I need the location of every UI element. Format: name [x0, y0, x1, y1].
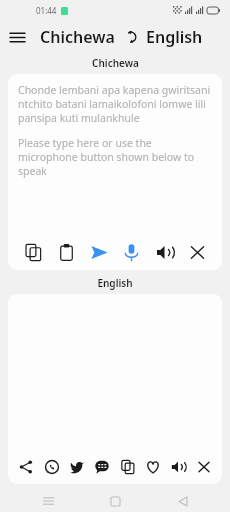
staticText: Chichewa: [92, 56, 139, 70]
button[interactable]: English: [146, 26, 203, 48]
staticText: Chonde lembani apa kapena gwiritsani ntc…: [18, 83, 212, 125]
button[interactable]: Menu: [0, 20, 34, 54]
button[interactable]: Speak: [150, 238, 178, 266]
button[interactable]: Copy: [117, 456, 139, 478]
button[interactable]: Back: [163, 490, 203, 512]
staticText: English: [97, 276, 133, 290]
button[interactable]: SMS: [91, 456, 113, 478]
button[interactable]: Swap languages: [121, 27, 141, 47]
button[interactable]: Paste: [52, 238, 80, 266]
button[interactable]: Share: [15, 456, 37, 478]
button[interactable]: Translate: [85, 238, 113, 266]
button[interactable]: Speak: [167, 456, 189, 478]
button[interactable]: Home: [95, 490, 135, 512]
button[interactable]: Twitter: [66, 456, 88, 478]
staticText: Please type here or use the microphone b…: [18, 136, 212, 178]
button[interactable]: WhatsApp: [41, 456, 63, 478]
staticText: 01:44: [36, 5, 57, 16]
button[interactable]: Clear: [193, 456, 215, 478]
button[interactable]: Favourite: [142, 456, 164, 478]
button[interactable]: Chichewa: [40, 26, 115, 48]
button[interactable]: Clear: [183, 238, 211, 266]
button[interactable]: Recents: [28, 490, 68, 512]
button[interactable]: Chonde lembani apa kapena gwiritsani ntc…: [18, 83, 212, 234]
button[interactable]: Microphone: [117, 238, 145, 266]
button[interactable]: Copy: [19, 238, 47, 266]
